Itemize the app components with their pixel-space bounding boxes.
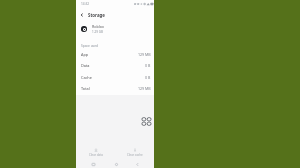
button[interactable]: Roblox bbox=[81, 24, 149, 34]
button[interactable]: App bbox=[81, 49, 151, 60]
staticText: 129 MB bbox=[138, 52, 151, 57]
staticText: Space used bbox=[81, 44, 98, 48]
staticText: Cache bbox=[81, 75, 92, 80]
staticText: App bbox=[81, 52, 89, 57]
staticText: Total bbox=[81, 86, 90, 91]
staticText: 0 B bbox=[145, 63, 151, 68]
staticText: 1.29 GB bbox=[92, 30, 103, 34]
button[interactable]: Home bbox=[112, 160, 120, 168]
button[interactable]: Recent apps bbox=[89, 160, 97, 168]
staticText: Clear data bbox=[89, 153, 103, 157]
button[interactable]: Clear cache bbox=[115, 148, 154, 157]
staticText: 0 B bbox=[145, 75, 151, 80]
button[interactable]: Cache bbox=[81, 72, 151, 83]
staticText: Storage bbox=[88, 12, 105, 18]
button[interactable]: Total bbox=[81, 83, 151, 94]
button[interactable]: Clear data bbox=[76, 148, 115, 157]
staticText: 14:32 bbox=[81, 2, 90, 6]
staticText: 129 MB bbox=[138, 86, 151, 91]
staticText: Clear cache bbox=[127, 153, 143, 157]
button[interactable]: Navigate up bbox=[76, 9, 88, 20]
button[interactable]: Back bbox=[133, 160, 141, 168]
staticText: Data bbox=[81, 63, 90, 68]
button[interactable]: Data bbox=[81, 60, 151, 71]
button[interactable]: All apps bbox=[141, 116, 151, 126]
staticText: Roblox bbox=[92, 24, 104, 29]
